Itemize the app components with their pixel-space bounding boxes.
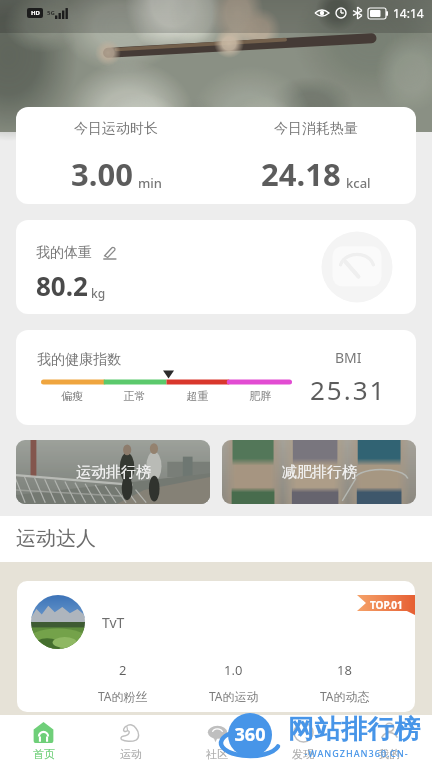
staticText: 运动排行榜	[76, 463, 151, 482]
button[interactable]: 我的健康指数	[16, 330, 416, 425]
staticText: 今日运动时长	[74, 120, 158, 138]
staticText: 80.2	[36, 268, 88, 303]
staticText: TvT	[102, 613, 125, 632]
button[interactable]: 运动	[87, 715, 174, 768]
staticText: TA的粉丝	[98, 688, 148, 704]
staticText: 我的体重	[36, 244, 92, 262]
staticText: 肥胖	[229, 389, 292, 403]
staticText: 3.00	[71, 153, 133, 195]
staticText: 我的	[378, 747, 400, 761]
other: 编辑体重	[103, 246, 117, 260]
staticText: 发现	[292, 747, 314, 761]
button[interactable]: 社区	[174, 715, 260, 768]
staticText: min	[138, 174, 162, 192]
button[interactable]: 我的体重	[16, 220, 416, 314]
button[interactable]: 运动排行榜	[16, 440, 210, 504]
staticText: 正常	[103, 389, 166, 403]
staticText: 360	[228, 722, 272, 747]
button[interactable]: 我的	[346, 715, 432, 768]
staticText: TOP.01	[370, 598, 403, 612]
staticText: 5G	[47, 9, 55, 17]
staticText: 18	[337, 661, 352, 679]
staticText: 2	[119, 661, 127, 679]
staticText: kg	[91, 285, 106, 301]
staticText: HD	[31, 9, 40, 17]
staticText: 社区	[206, 747, 228, 761]
staticText: 首页	[33, 747, 55, 761]
staticText: 运动	[120, 747, 142, 761]
staticText: 1.0	[224, 661, 243, 679]
button[interactable]: 首页	[0, 715, 87, 768]
staticText: -WANGZHAN360.CN-	[288, 747, 425, 759]
staticText: 减肥排行榜	[282, 463, 357, 482]
staticText: 超重	[166, 389, 229, 403]
staticText: 14:14	[393, 5, 424, 21]
staticText: kcal	[346, 174, 371, 192]
staticText: 25.31	[310, 372, 387, 407]
button[interactable]: TvT	[17, 581, 415, 712]
staticText: 运动达人	[16, 526, 96, 551]
button[interactable]: 发现	[260, 715, 346, 768]
staticText: 我的健康指数	[37, 351, 121, 369]
button[interactable]: 减肥排行榜	[222, 440, 416, 504]
staticText: 今日消耗热量	[274, 120, 358, 138]
staticText: TA的运动	[209, 688, 259, 704]
staticText: 网站排行榜	[288, 713, 421, 746]
staticText: TA的动态	[320, 688, 370, 704]
staticText: BMI	[335, 348, 362, 367]
staticText: 偏瘦	[41, 389, 103, 403]
staticText: 24.18	[261, 153, 341, 195]
